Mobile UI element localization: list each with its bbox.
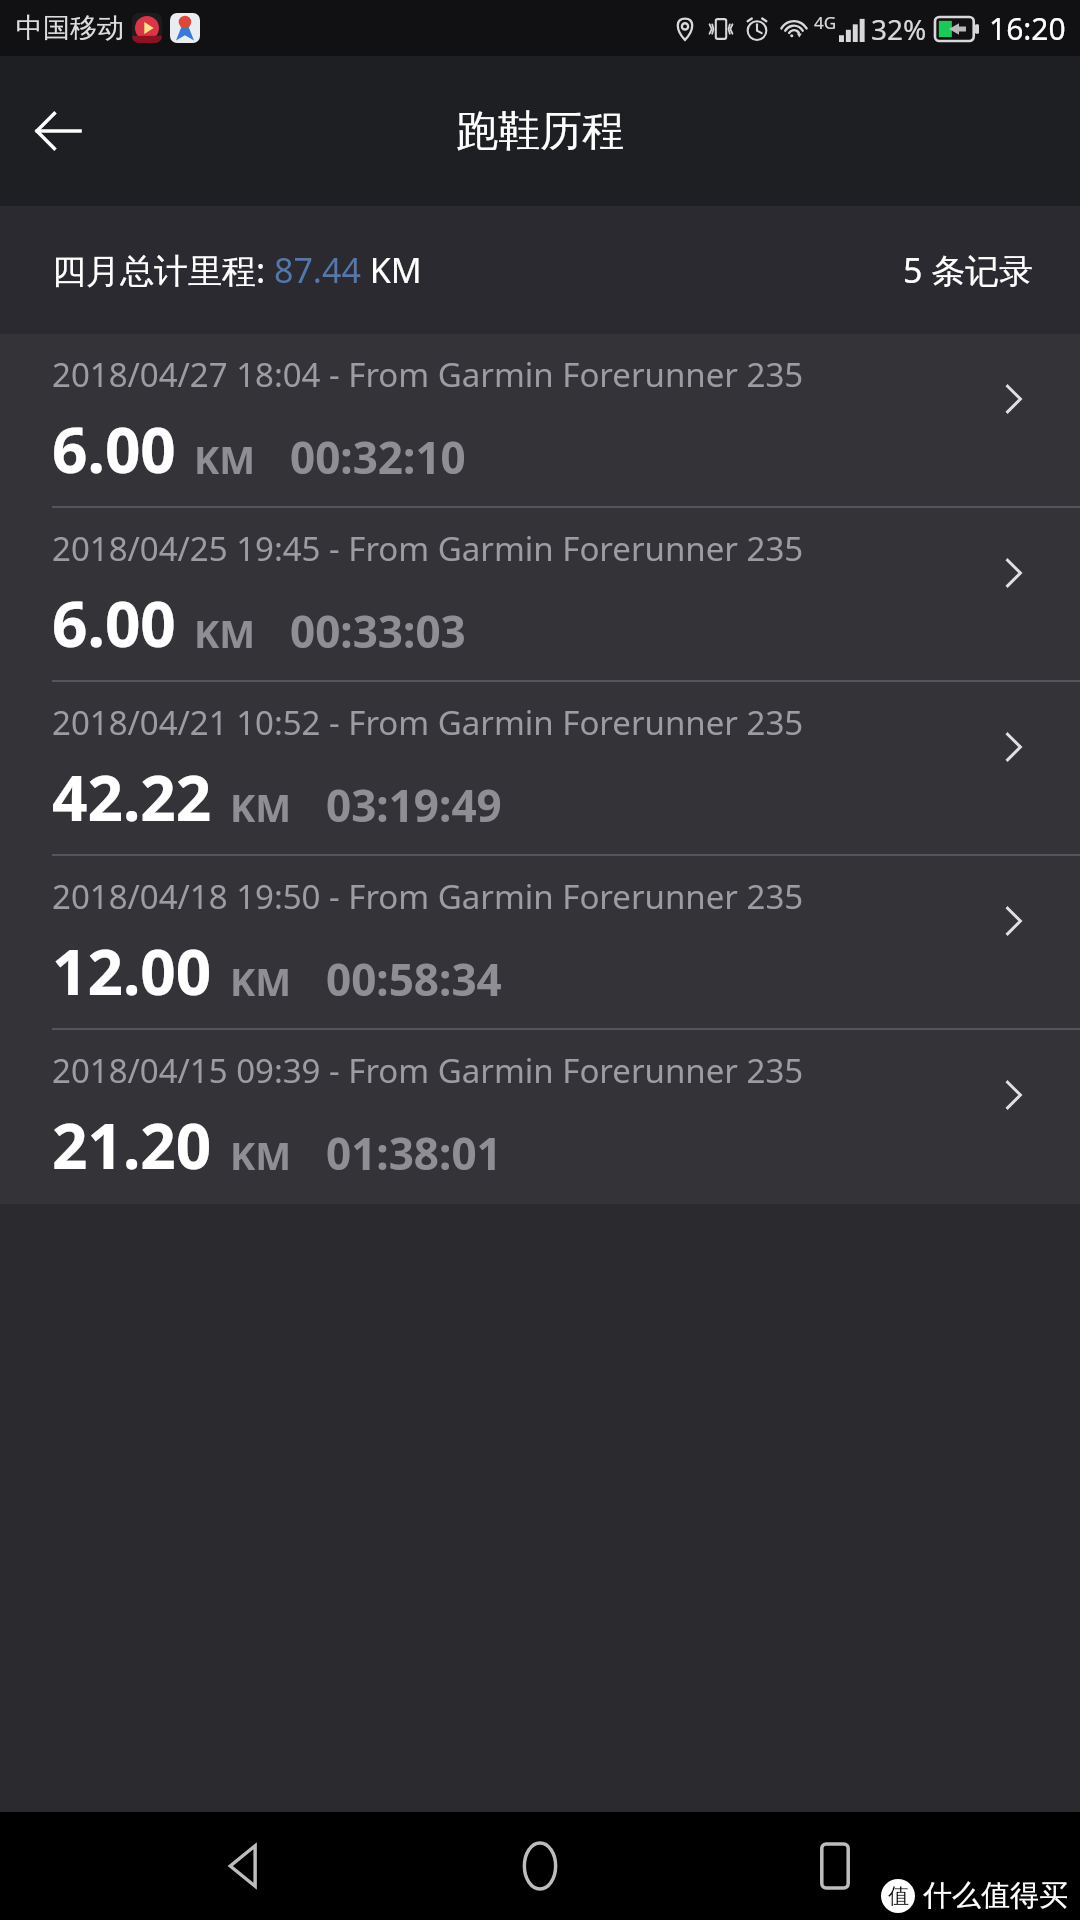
- staticText: KM: [230, 781, 292, 833]
- staticText: 2018/04/27 18:04 - From Garmin Forerunne…: [52, 352, 804, 397]
- button[interactable]: 2018/04/21 10:52 - From Garmin Forerunne…: [0, 682, 1080, 856]
- staticText: 2018/04/21 10:52 - From Garmin Forerunne…: [52, 700, 804, 745]
- staticText: 跑鞋历程: [456, 105, 624, 158]
- button[interactable]: Home: [490, 1816, 590, 1916]
- staticText: 值: [888, 1883, 909, 1909]
- button[interactable]: 2018/04/15 09:39 - From Garmin Forerunne…: [0, 1030, 1080, 1204]
- staticText: KM: [194, 607, 256, 659]
- staticText: 16:20: [989, 8, 1066, 49]
- staticText: 6.00: [52, 407, 176, 491]
- staticText: 00:58:34: [326, 949, 502, 1009]
- staticText: 01:38:01: [326, 1123, 502, 1183]
- button[interactable]: Recent apps: [785, 1816, 885, 1916]
- staticText: 00:33:03: [290, 601, 466, 661]
- staticText: 5 条记录: [903, 247, 1034, 293]
- staticText: KM: [230, 1129, 292, 1181]
- staticText: 21.20: [52, 1103, 212, 1187]
- button[interactable]: Back: [195, 1816, 295, 1916]
- button[interactable]: 2018/04/27 18:04 - From Garmin Forerunne…: [0, 334, 1080, 508]
- button[interactable]: 2018/04/25 19:45 - From Garmin Forerunne…: [0, 508, 1080, 682]
- staticText: 00:32:10: [290, 427, 466, 487]
- staticText: 什么值得买: [923, 1877, 1068, 1914]
- button[interactable]: 2018/04/18 19:50 - From Garmin Forerunne…: [0, 856, 1080, 1030]
- staticText: 四月总计里程: 87.44 KM: [52, 247, 422, 293]
- staticText: 中国移动: [16, 11, 124, 45]
- staticText: KM: [194, 433, 256, 485]
- staticText: 12.00: [52, 929, 212, 1013]
- staticText: 2018/04/18 19:50 - From Garmin Forerunne…: [52, 874, 804, 919]
- staticText: 03:19:49: [326, 775, 502, 835]
- button[interactable]: Back: [10, 83, 106, 179]
- staticText: KM: [230, 955, 292, 1007]
- staticText: 4G: [814, 11, 837, 34]
- staticText: 2018/04/15 09:39 - From Garmin Forerunne…: [52, 1048, 804, 1093]
- staticText: 6.00: [52, 581, 176, 665]
- staticText: 42.22: [52, 755, 212, 839]
- staticText: 32%: [871, 10, 927, 48]
- staticText: 2018/04/25 19:45 - From Garmin Forerunne…: [52, 526, 804, 571]
